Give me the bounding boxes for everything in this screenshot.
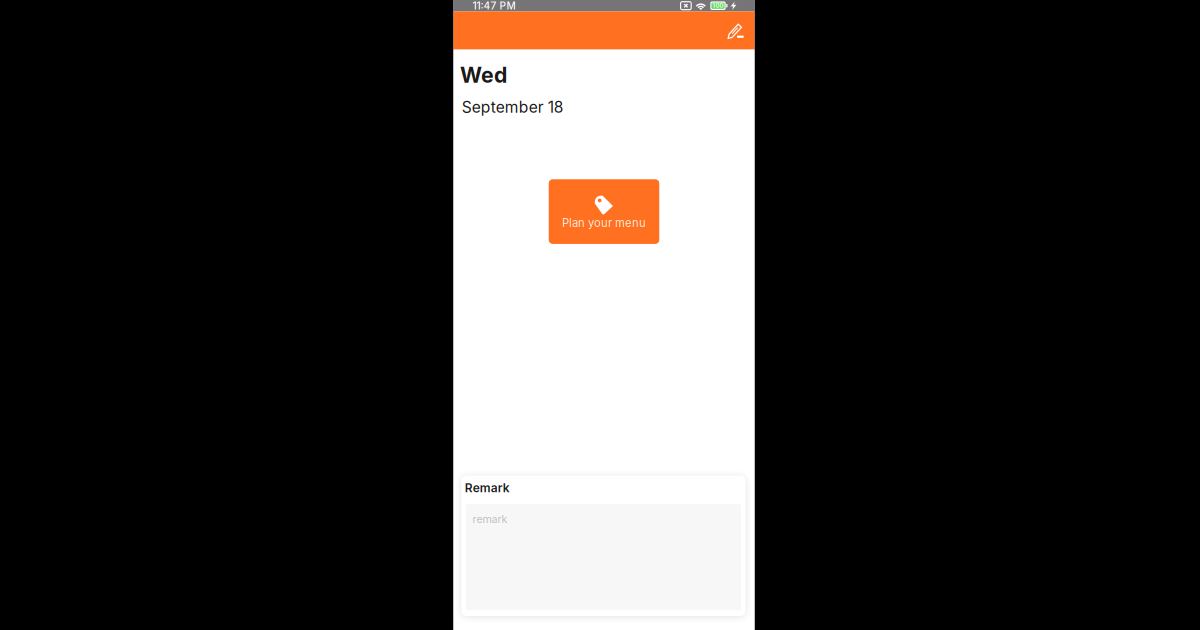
staticText: Wed xyxy=(460,62,507,88)
staticText: remark xyxy=(472,512,507,525)
button[interactable]: Edit xyxy=(720,14,752,46)
staticText: 11:47 PM xyxy=(472,0,515,12)
button[interactable]: Plan your menu xyxy=(549,179,659,244)
staticText: Plan your menu xyxy=(562,216,646,230)
staticText: Remark xyxy=(465,480,510,495)
staticText: 100 xyxy=(712,2,723,9)
staticText: September 18 xyxy=(462,98,564,117)
